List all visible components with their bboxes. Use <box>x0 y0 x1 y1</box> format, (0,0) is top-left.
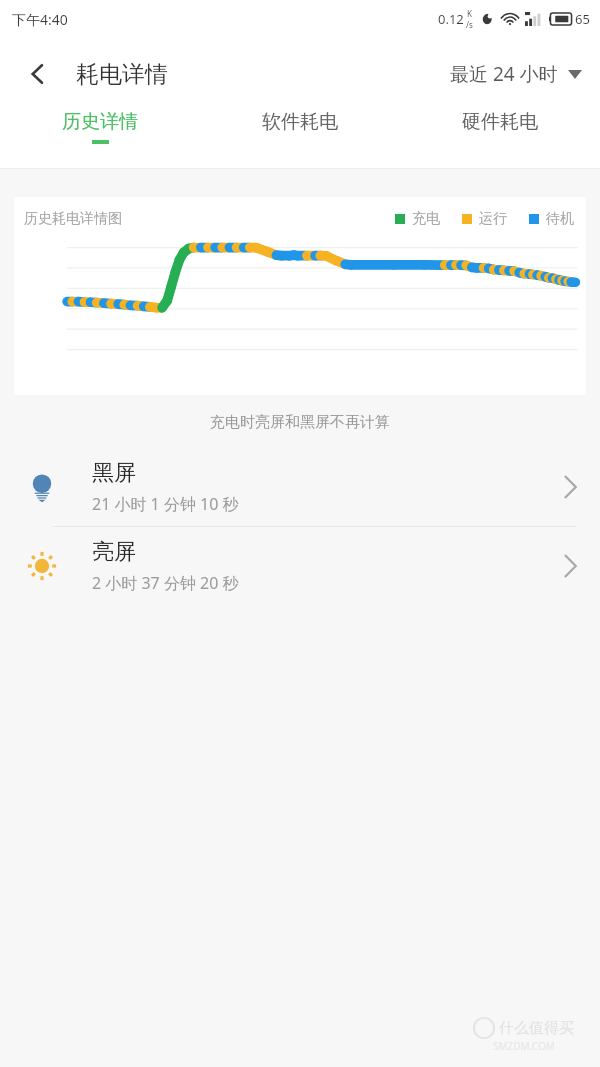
staticText: 最近 24 小时 <box>450 61 558 87</box>
staticText: 历史耗电详情图 <box>24 210 122 228</box>
button[interactable]: Back <box>16 52 60 96</box>
staticText: 2 小时 37 分钟 20 秒 <box>92 572 239 594</box>
staticText: 耗电详情 <box>76 60 168 89</box>
staticText: 运行 <box>479 210 507 228</box>
button[interactable]: 历史详情 <box>0 110 200 144</box>
staticText: 充电 <box>412 210 440 228</box>
staticText: 下午4:40 <box>12 10 68 29</box>
button[interactable]: 黑屏 <box>0 448 600 526</box>
staticText: 历史详情 <box>62 110 138 134</box>
staticText: 硬件耗电 <box>462 110 538 134</box>
staticText: 什么值得买 <box>499 1019 574 1038</box>
staticText: 软件耗电 <box>262 110 338 134</box>
staticText: 待机 <box>546 210 574 228</box>
staticText: 21 小时 1 分钟 10 秒 <box>92 493 239 515</box>
staticText: 65 <box>575 10 590 28</box>
staticText: 0.12 <box>438 10 464 28</box>
button[interactable]: 硬件耗电 <box>400 110 600 144</box>
staticText: 亮屏 <box>92 538 136 566</box>
button[interactable]: 软件耗电 <box>200 110 400 144</box>
staticText: K <box>467 8 472 19</box>
button[interactable]: 亮屏 <box>0 527 600 605</box>
button[interactable]: 最近 24 小时 <box>450 61 582 87</box>
staticText: 黑屏 <box>92 459 136 487</box>
staticText: 充电时亮屏和黑屏不再计算 <box>0 413 600 432</box>
staticText: /s <box>466 19 473 30</box>
staticText: SMZDM.COM <box>493 1039 555 1053</box>
